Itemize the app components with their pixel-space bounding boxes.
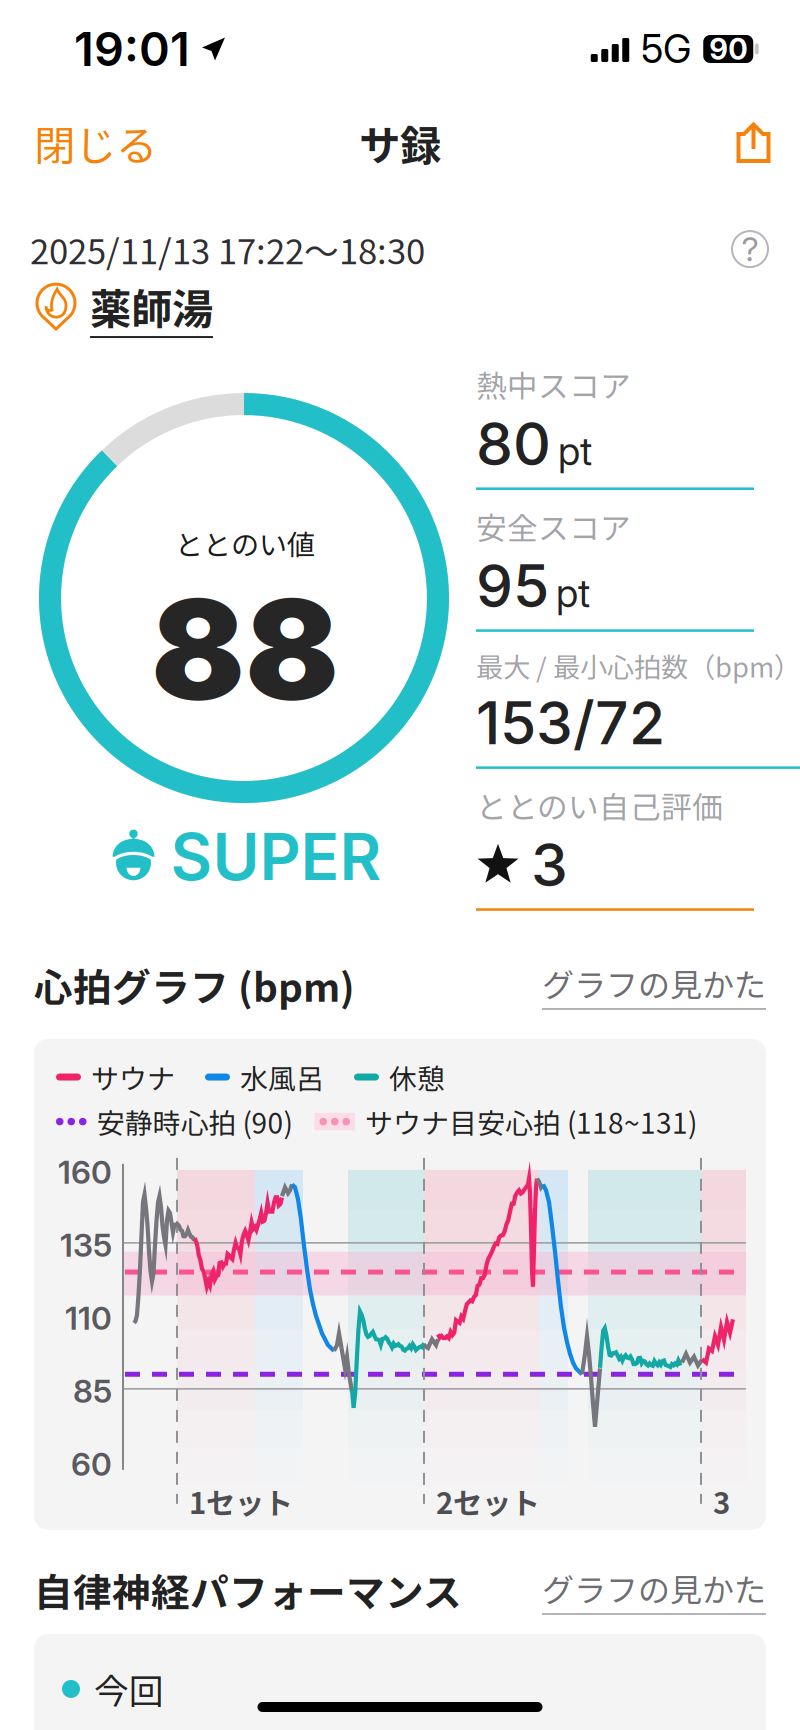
staticText: 熱中スコア (476, 362, 631, 406)
staticText: 休憩 (389, 1057, 445, 1097)
staticText: ととのい自己評価 (476, 783, 723, 827)
staticText: 19:01 (74, 21, 190, 77)
staticText: 3 (531, 829, 568, 900)
staticText: サウナ目安心拍 (118~131) (365, 1101, 697, 1142)
button[interactable]: グラフの見かた (542, 960, 766, 1010)
staticText: 110 (65, 1299, 112, 1338)
staticText: サウナ (91, 1057, 175, 1097)
staticText: 95 (476, 550, 549, 621)
staticText: SUPER (170, 818, 381, 895)
staticText: 3 (713, 1480, 730, 1522)
staticText: pt (556, 570, 590, 616)
staticText: サ録 (359, 113, 441, 173)
button[interactable]: 共有 (709, 112, 800, 174)
staticText: 2セット (436, 1480, 540, 1522)
button[interactable]: ヘルプ (732, 231, 768, 267)
staticText: ととのい値 (175, 523, 315, 563)
button[interactable]: グラフの見かた (542, 1565, 766, 1615)
staticText: 90 (709, 31, 747, 67)
staticText: 88 (151, 565, 339, 733)
staticText: 60 (71, 1445, 112, 1484)
staticText: 80 (476, 408, 551, 479)
staticText: 自律神経パフォーマンス (34, 1562, 462, 1618)
staticText: pt (558, 428, 592, 475)
staticText: 安全スコア (476, 504, 631, 548)
staticText: 2025/11/13 17:22〜18:30 (30, 224, 425, 274)
button[interactable]: 閉じる (0, 99, 181, 187)
staticText: 薬師湯 (90, 276, 213, 336)
staticText: 最大 / 最小心拍数（bpm） (476, 646, 800, 685)
staticText: ? (741, 229, 758, 269)
staticText: 5G (641, 26, 691, 72)
staticText: 水風呂 (240, 1057, 324, 1097)
staticText: 1セット (189, 1480, 293, 1522)
staticText: グラフの見かた (542, 960, 766, 1006)
staticText: 安静時心拍 (90) (96, 1101, 292, 1142)
staticText: 心拍グラフ (bpm) (34, 957, 355, 1013)
staticText: 閉じる (34, 113, 157, 173)
staticText: 135 (60, 1226, 112, 1265)
button[interactable]: 薬師湯 (0, 274, 800, 338)
staticText: グラフの見かた (542, 1565, 766, 1611)
staticText: 今回 (94, 1664, 164, 1714)
staticText: 160 (58, 1153, 112, 1192)
staticText: 85 (73, 1372, 112, 1411)
staticText: 153/72 (476, 687, 665, 758)
